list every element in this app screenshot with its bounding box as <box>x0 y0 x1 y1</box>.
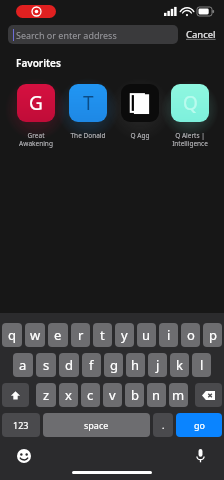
button[interactable]: j <box>148 353 167 377</box>
button[interactable]: e <box>48 323 68 347</box>
button[interactable]: G <box>10 77 62 148</box>
button[interactable]: s <box>36 353 56 377</box>
staticText: w <box>30 326 41 344</box>
staticText: y <box>121 326 128 344</box>
staticText: z <box>43 386 50 404</box>
button[interactable]: . <box>153 413 173 437</box>
staticText: a <box>19 356 27 374</box>
button[interactable]: c <box>81 383 100 407</box>
staticText: s <box>43 356 50 374</box>
staticText: p <box>209 326 217 344</box>
button[interactable]: m <box>169 383 188 407</box>
staticText: c <box>87 386 94 404</box>
staticText: go <box>194 419 205 431</box>
button[interactable]: Delete <box>195 383 222 407</box>
staticText: i <box>167 326 171 344</box>
staticText: 123 <box>13 419 29 431</box>
button[interactable]: space <box>43 413 150 437</box>
staticText: x <box>65 386 72 404</box>
staticText: u <box>142 326 151 344</box>
staticText: Q <box>183 90 198 116</box>
button[interactable]: l <box>192 353 211 377</box>
button[interactable]: a <box>13 353 33 377</box>
button[interactable]: h <box>126 353 145 377</box>
button[interactable]: v <box>103 383 122 407</box>
staticText: t <box>100 326 105 344</box>
staticText: Great Awakening <box>10 131 62 148</box>
button[interactable]: x <box>59 383 78 407</box>
button[interactable]: T <box>62 77 114 140</box>
button[interactable]: d <box>59 353 79 377</box>
staticText: Search or enter address <box>16 29 117 41</box>
staticText: m <box>172 386 185 404</box>
staticText: Cancel <box>186 28 216 41</box>
staticText: T <box>83 90 94 116</box>
button[interactable]: k <box>170 353 189 377</box>
staticText: f <box>89 356 94 374</box>
button[interactable]: n <box>147 383 166 407</box>
staticText: . <box>162 419 165 431</box>
button[interactable]: Search or enter address <box>8 25 178 44</box>
button[interactable]: u <box>137 323 156 347</box>
staticText: j <box>156 356 160 374</box>
staticText: Q Agg <box>114 131 166 140</box>
button[interactable]: f <box>82 353 101 377</box>
staticText: e <box>54 326 62 344</box>
button[interactable]: g <box>104 353 123 377</box>
button[interactable]: w <box>25 323 45 347</box>
staticText: h <box>131 356 140 374</box>
button[interactable]: p <box>203 323 222 347</box>
button[interactable]: go <box>176 413 222 437</box>
button[interactable]: Recording <box>16 5 56 18</box>
staticText: v <box>109 386 116 404</box>
button[interactable]: t <box>93 323 112 347</box>
staticText: g <box>110 356 118 374</box>
button[interactable]: q <box>2 323 22 347</box>
staticText: The Donald <box>62 131 114 140</box>
button[interactable] <box>2 383 29 407</box>
button[interactable]: o <box>181 323 200 347</box>
button[interactable]: b <box>125 383 144 407</box>
staticText: r <box>78 326 84 344</box>
staticText: space <box>84 419 109 431</box>
button[interactable]: Dictation <box>190 446 210 466</box>
button[interactable]: z <box>36 383 56 407</box>
staticText: k <box>176 356 183 374</box>
button[interactable]: Cancel <box>186 28 216 41</box>
staticText: n <box>152 386 161 404</box>
staticText: Q Alerts | Intelligence <box>166 131 214 148</box>
button[interactable]: i <box>159 323 178 347</box>
staticText: q <box>8 326 16 344</box>
staticText: d <box>65 356 73 374</box>
button[interactable]: Emoji <box>14 446 34 466</box>
staticText: l <box>200 356 204 374</box>
staticText: G <box>29 90 43 116</box>
staticText: Favorites <box>16 56 61 70</box>
button[interactable]: Q Agg <box>114 77 166 140</box>
button[interactable]: y <box>115 323 134 347</box>
staticText: b <box>131 386 139 404</box>
button[interactable]: 123 <box>2 413 40 437</box>
staticText: o <box>187 326 195 344</box>
button[interactable]: r <box>71 323 90 347</box>
button[interactable]: Q <box>166 77 214 148</box>
